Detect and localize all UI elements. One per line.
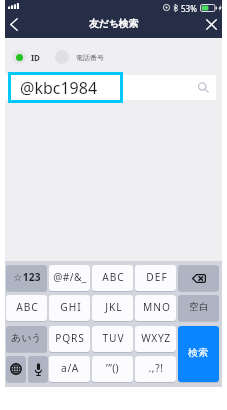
- staticText: PQRS: [55, 331, 85, 345]
- button[interactable]: Close: [199, 12, 224, 37]
- staticText: MNO: [143, 300, 171, 314]
- staticText: ☆123: [13, 270, 41, 284]
- staticText: 空白: [189, 301, 209, 313]
- button[interactable]: 電話番号: [55, 50, 104, 64]
- button[interactable]: del: [178, 265, 219, 291]
- staticText: .,?!: [148, 361, 164, 375]
- staticText: @kbc1984: [20, 77, 98, 99]
- staticText: あいう: [11, 332, 42, 344]
- button[interactable]: DEF: [135, 265, 176, 291]
- button[interactable]: TUV: [92, 326, 133, 352]
- staticText: @#/&_: [53, 270, 87, 284]
- staticText: DEF: [146, 270, 168, 284]
- button[interactable]: ID: [12, 50, 40, 64]
- button[interactable]: globe: [6, 356, 26, 382]
- staticText: 検索: [188, 347, 209, 359]
- staticText: 53%: [181, 3, 197, 12]
- staticText: WXYZ: [141, 331, 171, 345]
- staticText: ID: [31, 52, 40, 63]
- staticText: a/A: [61, 361, 79, 375]
- button[interactable]: ☆123: [6, 265, 47, 291]
- staticText: ABC: [102, 270, 125, 284]
- staticText: GHI: [60, 300, 82, 314]
- button[interactable]: JKL: [92, 295, 133, 321]
- button[interactable]: Back: [2, 12, 25, 37]
- staticText: JKL: [105, 300, 123, 314]
- button[interactable]: ’”(): [92, 356, 133, 382]
- button[interactable]: Search: [193, 75, 216, 100]
- button[interactable]: MNO: [135, 295, 176, 321]
- button[interactable]: PQRS: [49, 326, 90, 352]
- button[interactable]: ABC: [92, 265, 133, 291]
- button[interactable]: WXYZ: [135, 326, 176, 352]
- button[interactable]: @kbc1984: [8, 72, 123, 103]
- button[interactable]: あいう: [6, 326, 47, 352]
- staticText: ABC: [16, 300, 39, 314]
- staticText: 友だち検索: [89, 18, 139, 30]
- button[interactable]: 空白: [178, 295, 219, 321]
- button[interactable]: .,?!: [135, 356, 176, 382]
- button[interactable]: a/A: [49, 356, 90, 382]
- button[interactable]: @#/&_: [49, 265, 90, 291]
- staticText: 電話番号: [76, 53, 104, 62]
- button[interactable]: GHI: [49, 295, 90, 321]
- staticText: TUV: [102, 331, 125, 345]
- button[interactable]: mic: [28, 356, 48, 382]
- staticText: ’”(): [106, 361, 119, 375]
- button[interactable]: 検索: [178, 326, 219, 382]
- button[interactable]: ABC: [6, 295, 47, 321]
